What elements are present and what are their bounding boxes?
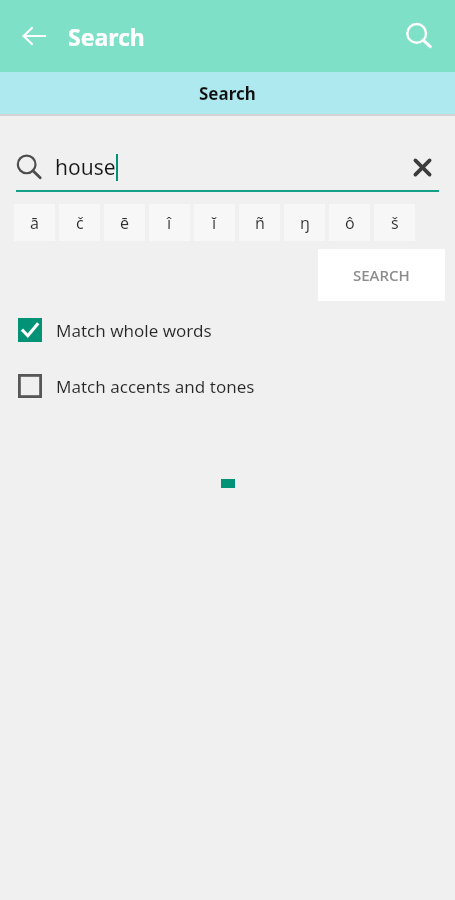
- staticText: house: [55, 153, 116, 182]
- staticText: č: [76, 212, 84, 234]
- button[interactable]: ô: [329, 204, 370, 241]
- button[interactable]: house: [16, 144, 439, 190]
- staticText: ñ: [255, 212, 265, 234]
- button[interactable]: Clear query: [405, 150, 439, 184]
- button[interactable]: SEARCH: [318, 249, 445, 301]
- staticText: Search: [68, 21, 145, 52]
- staticText: ē: [120, 212, 130, 234]
- staticText: Match accents and tones: [56, 375, 255, 398]
- button[interactable]: ŋ: [284, 204, 325, 241]
- staticText: Match whole words: [56, 319, 212, 342]
- staticText: š: [391, 212, 399, 234]
- staticText: ô: [345, 212, 355, 234]
- button[interactable]: î: [149, 204, 190, 241]
- staticText: î: [167, 212, 172, 234]
- button[interactable]: Match whole words: [0, 313, 455, 347]
- staticText: Search: [199, 82, 256, 105]
- button[interactable]: ē: [104, 204, 145, 241]
- button[interactable]: Match accents and tones: [0, 369, 455, 403]
- button[interactable]: ā: [14, 204, 55, 241]
- button[interactable]: Back: [12, 14, 56, 58]
- button[interactable]: ĭ: [194, 204, 235, 241]
- staticText: ŋ: [300, 212, 310, 234]
- button[interactable]: š: [374, 204, 415, 241]
- button[interactable]: Search: [397, 14, 441, 58]
- staticText: ĭ: [212, 212, 217, 234]
- staticText: SEARCH: [353, 265, 410, 285]
- staticText: ā: [30, 212, 39, 234]
- button[interactable]: č: [59, 204, 100, 241]
- button[interactable]: ñ: [239, 204, 280, 241]
- button[interactable]: Search: [0, 72, 455, 114]
